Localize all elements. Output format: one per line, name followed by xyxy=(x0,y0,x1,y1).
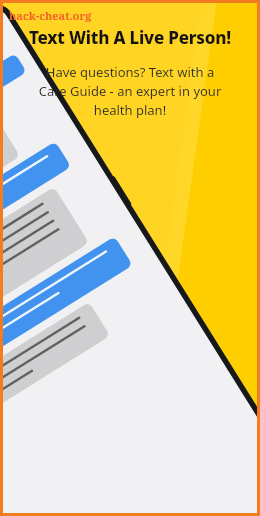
staticText: Have questions? Text with a Care Guide -… xyxy=(13,63,247,119)
button[interactable]: Text With A Live Person promo xyxy=(3,3,257,143)
staticText: hack-cheat.org xyxy=(9,8,92,23)
staticText: Text With A Live Person! xyxy=(3,26,257,49)
